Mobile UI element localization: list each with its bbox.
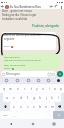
button[interactable]: u bbox=[40, 84, 46, 93]
button[interactable]: w bbox=[7, 84, 14, 93]
button[interactable]: Home bbox=[22, 119, 43, 128]
staticText: o bbox=[54, 87, 56, 91]
staticText: g bbox=[33, 96, 35, 100]
staticText: k bbox=[51, 96, 53, 100]
button[interactable]: Sticker bbox=[23, 77, 33, 84]
button[interactable]: Mensagem bbox=[1, 71, 56, 77]
staticText: Bem, faz tal estudio bbox=[4, 64, 26, 67]
button[interactable]: q bbox=[0, 84, 7, 93]
staticText: . bbox=[50, 113, 51, 117]
button[interactable]: j bbox=[43, 93, 49, 102]
button[interactable]: m bbox=[49, 102, 55, 111]
staticText: h bbox=[39, 96, 41, 100]
staticText: j bbox=[46, 96, 47, 100]
button[interactable]: Symbols bbox=[0, 111, 11, 119]
button[interactable]: o bbox=[52, 84, 58, 93]
staticText: i bbox=[49, 87, 50, 91]
button[interactable]: s bbox=[10, 93, 17, 102]
button[interactable]: Period bbox=[47, 111, 53, 119]
staticText: Rodaj porrão. Nosso lugar bbox=[2, 13, 37, 17]
staticText: Gente eu vamos que vocês do bbox=[4, 33, 41, 37]
button[interactable]: r bbox=[21, 84, 28, 93]
button[interactable]: Voice call bbox=[54, 4, 59, 9]
staticText: , bbox=[14, 113, 15, 117]
staticText: b bbox=[39, 105, 41, 109]
staticText: a bbox=[6, 96, 8, 100]
staticText: e bbox=[17, 87, 19, 91]
staticText: Que bom eu estou a casa de que tal bbox=[4, 59, 41, 62]
staticText: n bbox=[45, 105, 47, 109]
staticText: v bbox=[33, 105, 35, 109]
staticText: Eu Sou Bartolomeu Rios bbox=[10, 5, 41, 9]
button[interactable]: k bbox=[49, 93, 55, 102]
button[interactable]: c bbox=[24, 102, 31, 111]
staticText: Mensagem bbox=[6, 72, 21, 76]
button[interactable]: Comma bbox=[11, 111, 17, 119]
button[interactable]: Emoji bbox=[1, 77, 12, 84]
staticText: c bbox=[27, 105, 29, 109]
button[interactable]: d bbox=[17, 93, 24, 102]
button[interactable]: Video call bbox=[49, 4, 54, 9]
staticText: l bbox=[58, 96, 59, 100]
staticText: y bbox=[36, 87, 38, 91]
staticText: seguinte bbox=[4, 37, 15, 41]
button[interactable]: Recents bbox=[43, 119, 64, 128]
staticText: Terem bbox=[4, 67, 11, 70]
button[interactable]: GIF bbox=[12, 77, 23, 84]
staticText: Que bela filha bbox=[4, 55, 20, 58]
button[interactable]: h bbox=[37, 93, 43, 102]
staticText: z bbox=[13, 105, 15, 109]
button[interactable]: Backspace bbox=[55, 102, 64, 111]
button[interactable]: x bbox=[17, 102, 24, 111]
staticText: m bbox=[51, 105, 54, 109]
staticText: Paulista, obrigada bbox=[32, 24, 59, 28]
button[interactable]: Back bbox=[0, 4, 5, 9]
staticText: trabalaoi cocalclida bbox=[2, 17, 28, 21]
button[interactable]: e bbox=[14, 84, 21, 93]
staticText: s bbox=[13, 96, 15, 100]
button[interactable]: b bbox=[37, 102, 43, 111]
staticText: u bbox=[42, 87, 44, 91]
button[interactable]: l bbox=[55, 93, 61, 102]
button[interactable]: Enter bbox=[53, 111, 64, 119]
button[interactable]: p bbox=[58, 84, 64, 93]
button[interactable]: a bbox=[3, 93, 10, 102]
button[interactable]: n bbox=[43, 102, 49, 111]
button[interactable]: More options bbox=[59, 5, 63, 9]
button[interactable]: v bbox=[31, 102, 37, 111]
button[interactable]: y bbox=[34, 84, 40, 93]
staticText: q bbox=[3, 87, 5, 91]
button[interactable]: z bbox=[10, 102, 17, 111]
button[interactable]: Shift bbox=[0, 102, 10, 111]
staticText: f bbox=[27, 96, 28, 100]
staticText: Bom - gostei em nosso bbox=[2, 9, 32, 13]
staticText: ?123 bbox=[3, 114, 8, 117]
button[interactable]: t bbox=[28, 84, 34, 93]
button[interactable]: f bbox=[24, 93, 31, 102]
staticText: t bbox=[31, 87, 32, 91]
button[interactable]: Record voice message bbox=[57, 71, 63, 77]
button[interactable]: g bbox=[31, 93, 37, 102]
button[interactable]: Microphone bbox=[53, 77, 63, 84]
button[interactable]: Translate bbox=[43, 77, 53, 84]
staticText: w bbox=[9, 87, 12, 91]
staticText: p bbox=[60, 87, 62, 91]
staticText: d bbox=[20, 96, 22, 100]
staticText: r bbox=[24, 87, 26, 91]
button[interactable]: Back bbox=[0, 119, 22, 128]
button[interactable]: Search bbox=[33, 77, 43, 84]
staticText: Estou bbox=[4, 45, 10, 48]
staticText: x bbox=[20, 105, 22, 109]
button[interactable]: i bbox=[46, 84, 52, 93]
